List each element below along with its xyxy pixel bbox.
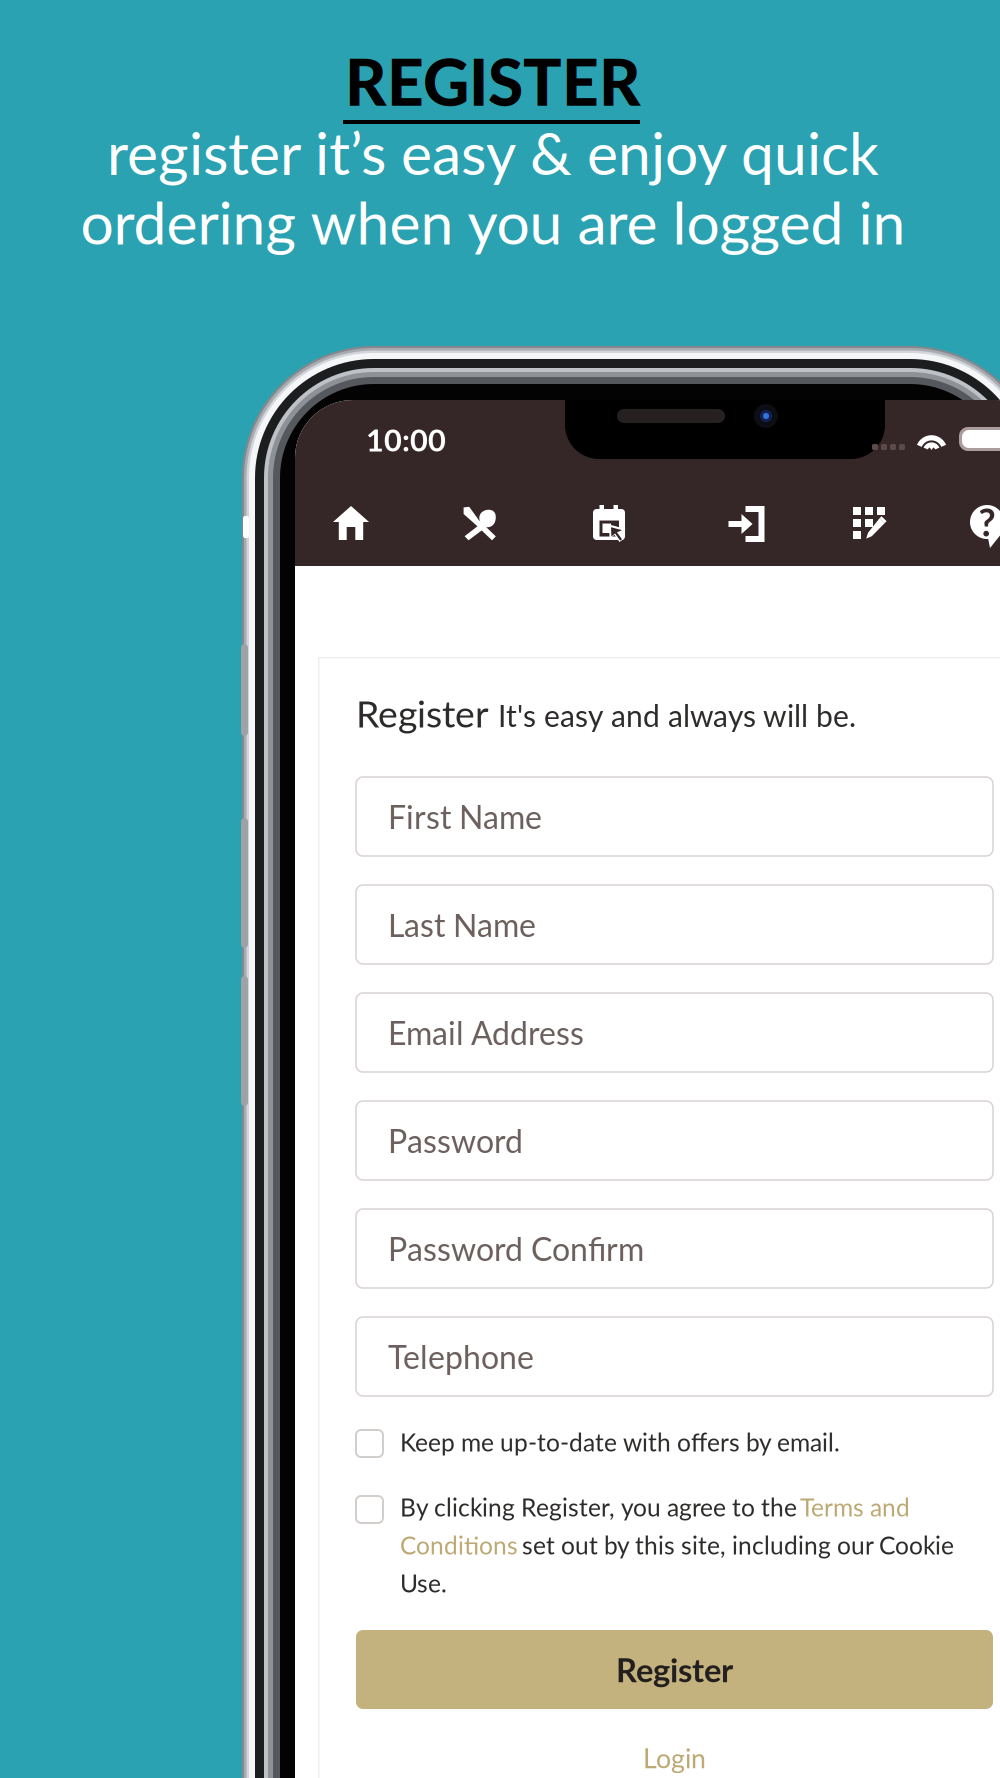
button[interactable]: Help xyxy=(970,505,1000,557)
button[interactable]: Home xyxy=(333,506,379,558)
staticText: Password xyxy=(388,1121,523,1160)
button[interactable]: First Name xyxy=(356,777,993,856)
staticText: register it’s easy & enjoy quick xyxy=(107,117,879,188)
staticText: It's easy and always will be. xyxy=(498,697,856,733)
staticText: Telephone xyxy=(388,1337,534,1376)
button[interactable]: Telephone xyxy=(356,1317,993,1396)
staticText: Terms and xyxy=(800,1492,910,1522)
staticText: Keep me up-to-date with offers by email. xyxy=(400,1427,840,1457)
staticText: set out by this site, including our Cook… xyxy=(516,1530,954,1560)
button[interactable]: Order online xyxy=(852,506,898,558)
button[interactable]: Password Confirm xyxy=(356,1209,993,1288)
button[interactable]: Menu xyxy=(462,506,508,558)
button[interactable]: Bookings xyxy=(592,505,638,557)
staticText: Conditions xyxy=(400,1530,518,1560)
staticText: ? xyxy=(978,500,995,544)
staticText: First Name xyxy=(388,797,542,836)
staticText: Password Confirm xyxy=(388,1229,644,1268)
button[interactable]: Email Address xyxy=(356,993,993,1072)
button[interactable]: Login xyxy=(356,1741,993,1775)
staticText: Email Address xyxy=(388,1013,584,1052)
staticText: Register xyxy=(356,691,489,735)
button[interactable]: Register xyxy=(356,1630,993,1709)
staticText: Use. xyxy=(400,1568,447,1598)
staticText: By clicking Register, you agree to the xyxy=(400,1492,803,1522)
button[interactable]: Password xyxy=(356,1101,993,1180)
button[interactable]: Sign in xyxy=(723,506,769,558)
staticText: Register xyxy=(616,1650,733,1689)
staticText: Last Name xyxy=(388,905,536,944)
staticText: 10:00 xyxy=(366,421,446,458)
button[interactable]: Keep me up-to-date with offers by email. xyxy=(356,1427,993,1467)
staticText: ordering when you are logged in xyxy=(80,187,905,257)
button[interactable]: By clicking Register, you agree to the xyxy=(356,1492,993,1616)
staticText: Login xyxy=(643,1742,706,1774)
staticText: REGISTER xyxy=(345,43,641,119)
button[interactable]: Last Name xyxy=(356,885,993,964)
